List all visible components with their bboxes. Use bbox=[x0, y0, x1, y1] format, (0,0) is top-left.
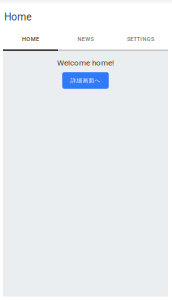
staticText: SETTINGS bbox=[127, 36, 154, 42]
button[interactable]: NEWS bbox=[58, 29, 113, 49]
button[interactable]: 詳細画面へ bbox=[62, 72, 109, 89]
staticText: Home bbox=[4, 11, 31, 23]
staticText: HOME bbox=[22, 36, 39, 42]
staticText: NEWS bbox=[78, 36, 93, 42]
staticText: 詳細画面へ bbox=[70, 77, 100, 84]
button[interactable]: SETTINGS bbox=[113, 29, 168, 49]
button[interactable]: HOME bbox=[3, 29, 58, 49]
staticText: Welcome home! bbox=[57, 58, 114, 67]
